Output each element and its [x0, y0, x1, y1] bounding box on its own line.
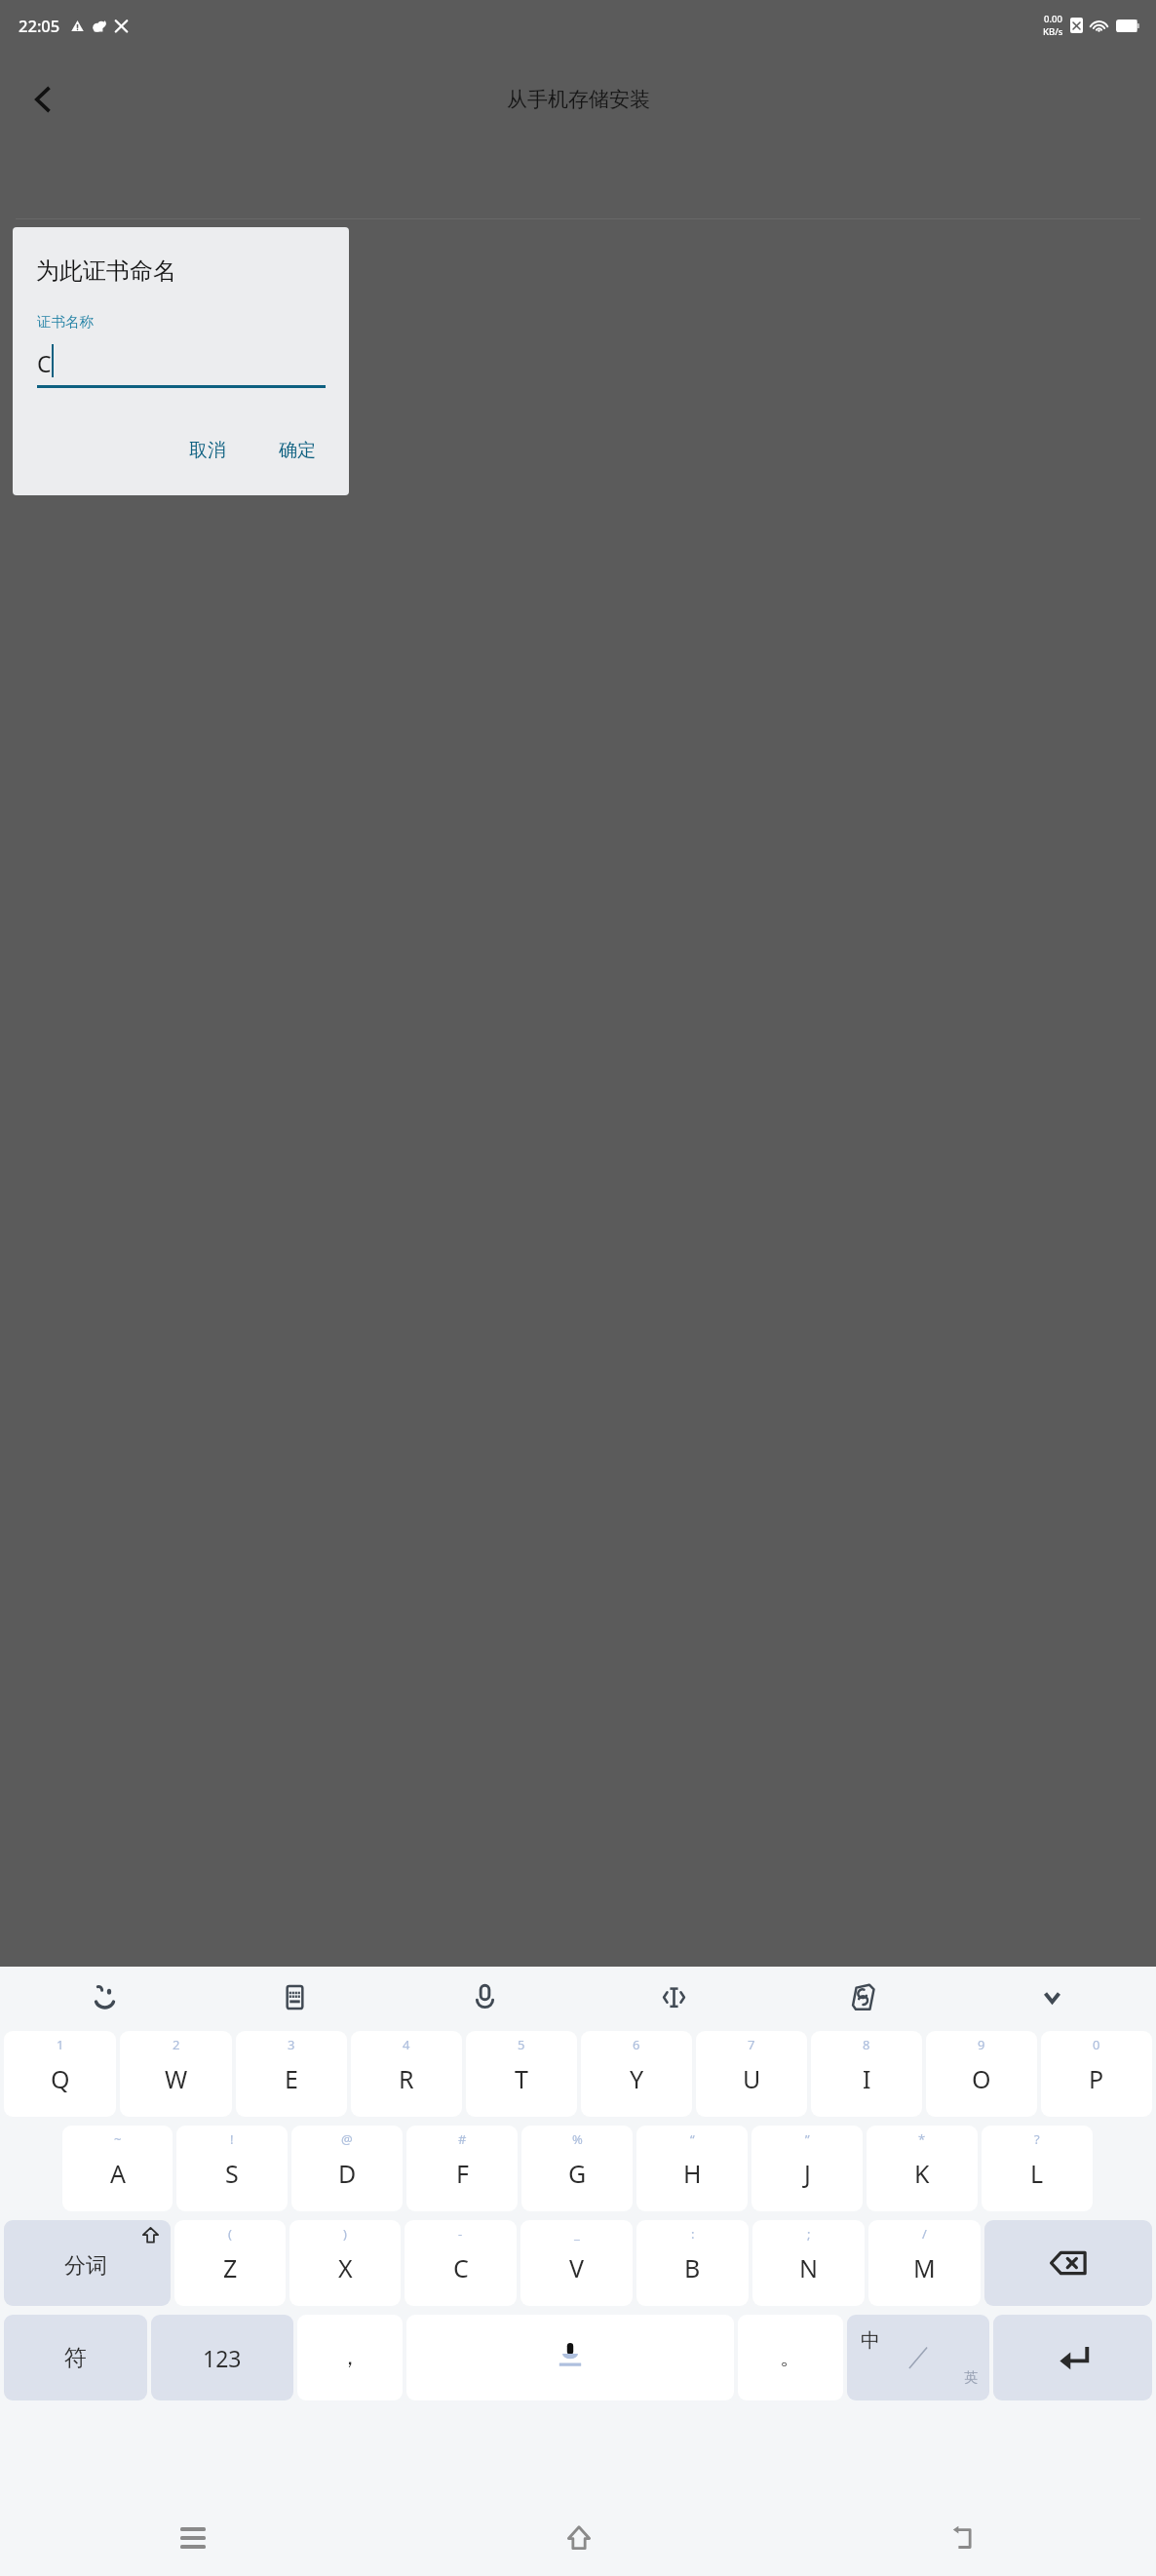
button[interactable]: Voice input [390, 1967, 579, 2027]
staticText: 2 [173, 2036, 180, 2053]
button[interactable]: ” [751, 2126, 863, 2211]
staticText: 确定 [279, 439, 316, 462]
button[interactable]: 9 [926, 2031, 1037, 2117]
staticText: 1 [57, 2036, 64, 2053]
staticText: T [515, 2062, 528, 2095]
staticText: V [569, 2251, 585, 2284]
staticText: 符 [64, 2344, 87, 2372]
button[interactable]: 1 [4, 2031, 116, 2117]
button[interactable]: 取消 [175, 429, 240, 472]
staticText: KB/s [1043, 25, 1063, 38]
staticText: W [165, 2062, 188, 2095]
button[interactable]: Enter [993, 2315, 1152, 2400]
staticText: @ [341, 2130, 353, 2148]
button[interactable]: ， [297, 2315, 403, 2400]
button[interactable]: Recent apps [0, 2500, 386, 2576]
staticText: 3 [288, 2036, 295, 2053]
staticText: 8 [863, 2036, 870, 2053]
staticText: ! [230, 2130, 234, 2148]
button[interactable]: Hide keyboard [957, 1967, 1146, 2027]
button[interactable]: 。 [738, 2315, 843, 2400]
button[interactable]: ! [176, 2126, 288, 2211]
staticText: 9 [978, 2036, 985, 2053]
staticText: # [458, 2130, 467, 2148]
staticText: % [572, 2130, 583, 2148]
button[interactable]: * [867, 2126, 978, 2211]
button[interactable]: 4 [351, 2031, 462, 2117]
button[interactable]: 3 [236, 2031, 347, 2117]
button[interactable]: 2 [120, 2031, 232, 2117]
staticText: 分词 [64, 2252, 107, 2280]
button[interactable]: ? [982, 2126, 1093, 2211]
button[interactable]: Space [406, 2315, 734, 2400]
button[interactable]: Emoji [10, 1967, 200, 2027]
staticText: ” [805, 2130, 810, 2148]
staticText: 中 [861, 2328, 880, 2353]
staticText: “ [690, 2130, 695, 2148]
button[interactable]: _ [520, 2220, 633, 2306]
staticText: S [225, 2157, 239, 2190]
button[interactable]: ~ [62, 2126, 173, 2211]
staticText: I [863, 2062, 871, 2095]
button[interactable]: 8 [811, 2031, 922, 2117]
staticText: D [338, 2157, 357, 2190]
staticText: ， [339, 2344, 361, 2371]
staticText: ( [228, 2225, 232, 2243]
staticText: 0.00 [1044, 13, 1062, 25]
staticText: 123 [203, 2343, 242, 2373]
staticText: E [285, 2062, 298, 2095]
staticText: L [1030, 2157, 1044, 2190]
button[interactable]: 123 [151, 2315, 293, 2400]
button[interactable]: % [521, 2126, 633, 2211]
staticText: G [568, 2157, 587, 2190]
staticText: F [456, 2157, 469, 2190]
staticText: : [691, 2225, 695, 2243]
button[interactable]: 确定 [265, 429, 329, 472]
staticText: ~ [114, 2130, 122, 2148]
staticText: P [1089, 2062, 1104, 2095]
button[interactable]: Cursor control [579, 1967, 768, 2027]
button[interactable]: Keyboard layout [200, 1967, 390, 2027]
button[interactable]: : [636, 2220, 749, 2306]
button[interactable]: # [406, 2126, 518, 2211]
button[interactable]: Back [771, 2500, 1156, 2576]
button[interactable]: 5 [466, 2031, 577, 2117]
button[interactable]: Backspace [984, 2220, 1152, 2306]
button[interactable]: “ [636, 2126, 748, 2211]
staticText: / [922, 2225, 927, 2243]
staticText: 证书名称 [37, 313, 94, 331]
button[interactable]: ) [289, 2220, 401, 2306]
button[interactable]: ( [174, 2220, 286, 2306]
button[interactable]: / [868, 2220, 981, 2306]
button[interactable]: Home [386, 2500, 771, 2576]
staticText: Q [51, 2062, 70, 2095]
staticText: U [743, 2062, 761, 2095]
staticText: C [453, 2251, 469, 2284]
staticText: ? [1034, 2130, 1040, 2148]
button[interactable]: 符 [4, 2315, 147, 2400]
button[interactable]: Back [8, 64, 78, 135]
staticText: 为此证书命名 [36, 256, 176, 286]
button[interactable]: Chinese English toggle [847, 2315, 989, 2400]
button[interactable]: 6 [581, 2031, 692, 2117]
button[interactable]: @ [291, 2126, 403, 2211]
button[interactable]: 0 [1041, 2031, 1152, 2117]
staticText: 。 [780, 2344, 801, 2371]
button[interactable]: ; [752, 2220, 865, 2306]
staticText: 5 [518, 2036, 525, 2053]
button[interactable]: 分词 [4, 2220, 171, 2306]
staticText: _ [574, 2225, 580, 2243]
staticText: 0 [1093, 2036, 1100, 2053]
staticText: 从手机存储安装 [507, 87, 650, 112]
staticText: 英 [964, 2369, 978, 2387]
staticText: * [918, 2130, 926, 2148]
staticText: R [399, 2062, 414, 2095]
staticText: ) [343, 2225, 347, 2243]
staticText: ; [807, 2225, 811, 2243]
staticText: 22:05 [19, 15, 60, 36]
button[interactable]: - [405, 2220, 517, 2306]
staticText: J [804, 2157, 811, 2190]
button[interactable]: 7 [696, 2031, 807, 2117]
staticText: O [972, 2062, 991, 2095]
button[interactable]: Sogou [768, 1967, 957, 2027]
